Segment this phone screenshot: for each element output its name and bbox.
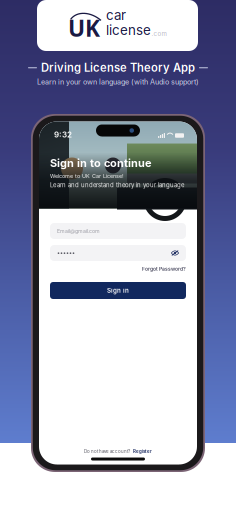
staticText: Sign in — [107, 287, 129, 294]
button[interactable]: •••••• — [50, 245, 186, 261]
staticText: Email@gmail.com — [57, 228, 100, 234]
staticText: UK — [68, 13, 100, 43]
staticText: Welcome to UK Car License! — [50, 173, 124, 179]
staticText: Forgot Password? — [142, 266, 186, 272]
staticText: license — [106, 22, 151, 38]
staticText: •••••• — [57, 250, 75, 256]
staticText: Learn and understand theory in your lang… — [50, 181, 184, 189]
button[interactable]: Forgot Password? — [50, 265, 186, 273]
staticText: car — [106, 7, 126, 23]
staticText: .com — [151, 30, 166, 37]
staticText: Learn in your own language (with Audio s… — [37, 78, 199, 86]
staticText: Register — [133, 449, 152, 454]
staticText: Driving License Theory App — [41, 61, 195, 75]
staticText: 9:32 — [54, 130, 72, 139]
staticText: Sign in to continue — [50, 156, 152, 170]
button[interactable]: Email@gmail.com — [50, 223, 186, 239]
button[interactable]: Sign in — [50, 282, 186, 299]
button[interactable]: Do not have account? — [84, 447, 152, 455]
staticText: Do not have account? — [84, 449, 130, 454]
